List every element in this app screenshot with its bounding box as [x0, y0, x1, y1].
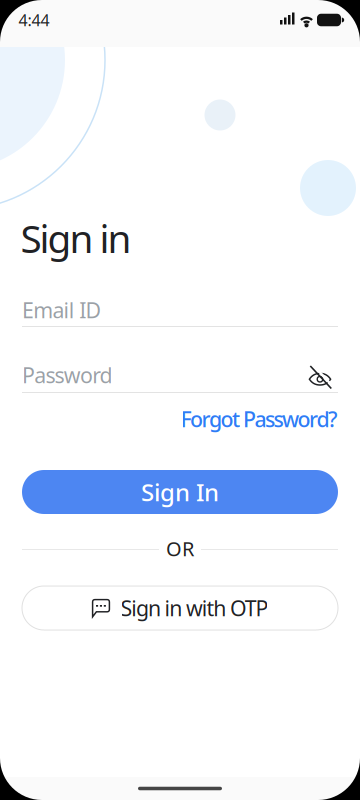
button[interactable]: Password	[0, 351, 360, 403]
button[interactable]: Forgot Password?	[180, 405, 338, 433]
staticText: Password	[22, 361, 112, 389]
staticText: 4:44	[18, 9, 49, 31]
button[interactable]: Sign in with OTP	[22, 586, 338, 630]
button[interactable]: Sign In	[22, 470, 338, 514]
staticText: Forgot Password?	[180, 405, 338, 433]
staticText: OR	[166, 535, 194, 562]
staticText: Sign In	[141, 476, 219, 508]
staticText: Sign in	[20, 212, 131, 264]
staticText: Email ID	[22, 296, 101, 324]
button[interactable]: Show password	[302, 359, 338, 395]
staticText: Sign in with OTP	[120, 594, 268, 622]
button[interactable]: Email ID	[0, 286, 360, 338]
